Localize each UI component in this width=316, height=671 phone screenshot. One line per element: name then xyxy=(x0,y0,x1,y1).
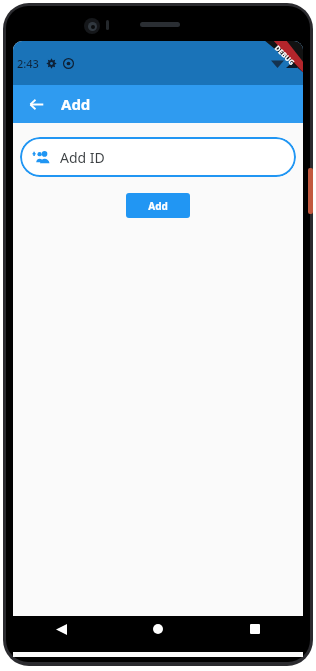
staticText: DEBUG xyxy=(272,44,297,68)
staticText: Add xyxy=(61,94,91,114)
staticText: Add xyxy=(148,199,168,213)
button[interactable]: Back xyxy=(13,616,109,652)
button[interactable]: Recent apps xyxy=(206,616,303,652)
button[interactable]: Back xyxy=(21,89,51,119)
button[interactable]: Add xyxy=(126,193,190,218)
staticText: Add ID xyxy=(60,148,105,167)
button[interactable]: Home xyxy=(109,616,206,652)
staticText: 2:43 xyxy=(17,56,39,71)
button[interactable]: Add ID xyxy=(20,137,296,177)
